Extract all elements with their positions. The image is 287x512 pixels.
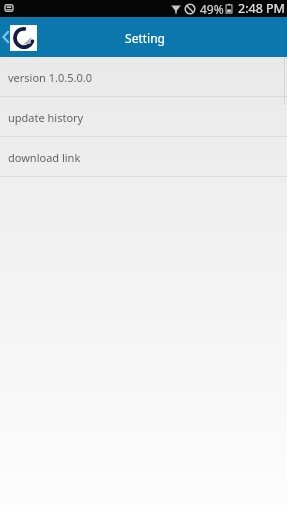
button[interactable]: Back <box>0 17 10 57</box>
button[interactable]: update history <box>0 97 287 137</box>
staticText: 49% <box>200 1 224 17</box>
staticText: version 1.0.5.0.0 <box>8 70 93 85</box>
button[interactable]: download link <box>0 137 287 177</box>
staticText: 2:48 PM <box>238 0 285 17</box>
staticText: download link <box>8 150 81 165</box>
staticText: update history <box>8 110 84 125</box>
button[interactable]: App logo <box>10 25 37 51</box>
button[interactable]: version 1.0.5.0.0 <box>0 57 287 97</box>
staticText: Setting <box>125 30 165 46</box>
